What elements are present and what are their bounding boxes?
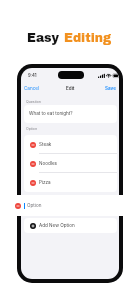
other: Delete option — [30, 161, 36, 167]
staticText: What to eat tonight? — [29, 111, 73, 117]
staticText: Steak — [39, 142, 52, 148]
staticText: Option — [26, 127, 37, 131]
staticText: Easy — [27, 31, 64, 44]
button[interactable]: What to eat tonight? — [24, 105, 117, 123]
staticText: Question — [26, 100, 41, 104]
other: Delete option — [15, 203, 21, 209]
button[interactable]: Save — [102, 84, 119, 94]
button[interactable]: Delete option — [14, 195, 127, 216]
other: Delete option — [30, 180, 36, 186]
staticText: Add New Option — [39, 223, 75, 229]
staticText: Save — [105, 86, 116, 92]
button[interactable]: Cancel — [21, 84, 43, 94]
staticText: Cancel — [24, 86, 40, 92]
staticText: Edit — [66, 86, 75, 92]
staticText: Editing — [64, 31, 112, 44]
button[interactable]: Delete option — [24, 135, 117, 154]
button[interactable]: Delete option — [24, 173, 117, 192]
button[interactable]: Add New Option — [24, 218, 117, 233]
staticText: Option — [27, 203, 42, 209]
button[interactable]: Delete option — [24, 154, 117, 173]
staticText: Pizza — [39, 180, 51, 186]
other: Delete option — [30, 142, 36, 148]
staticText: 9:41 — [28, 73, 37, 78]
staticText: Noodles — [39, 161, 57, 167]
